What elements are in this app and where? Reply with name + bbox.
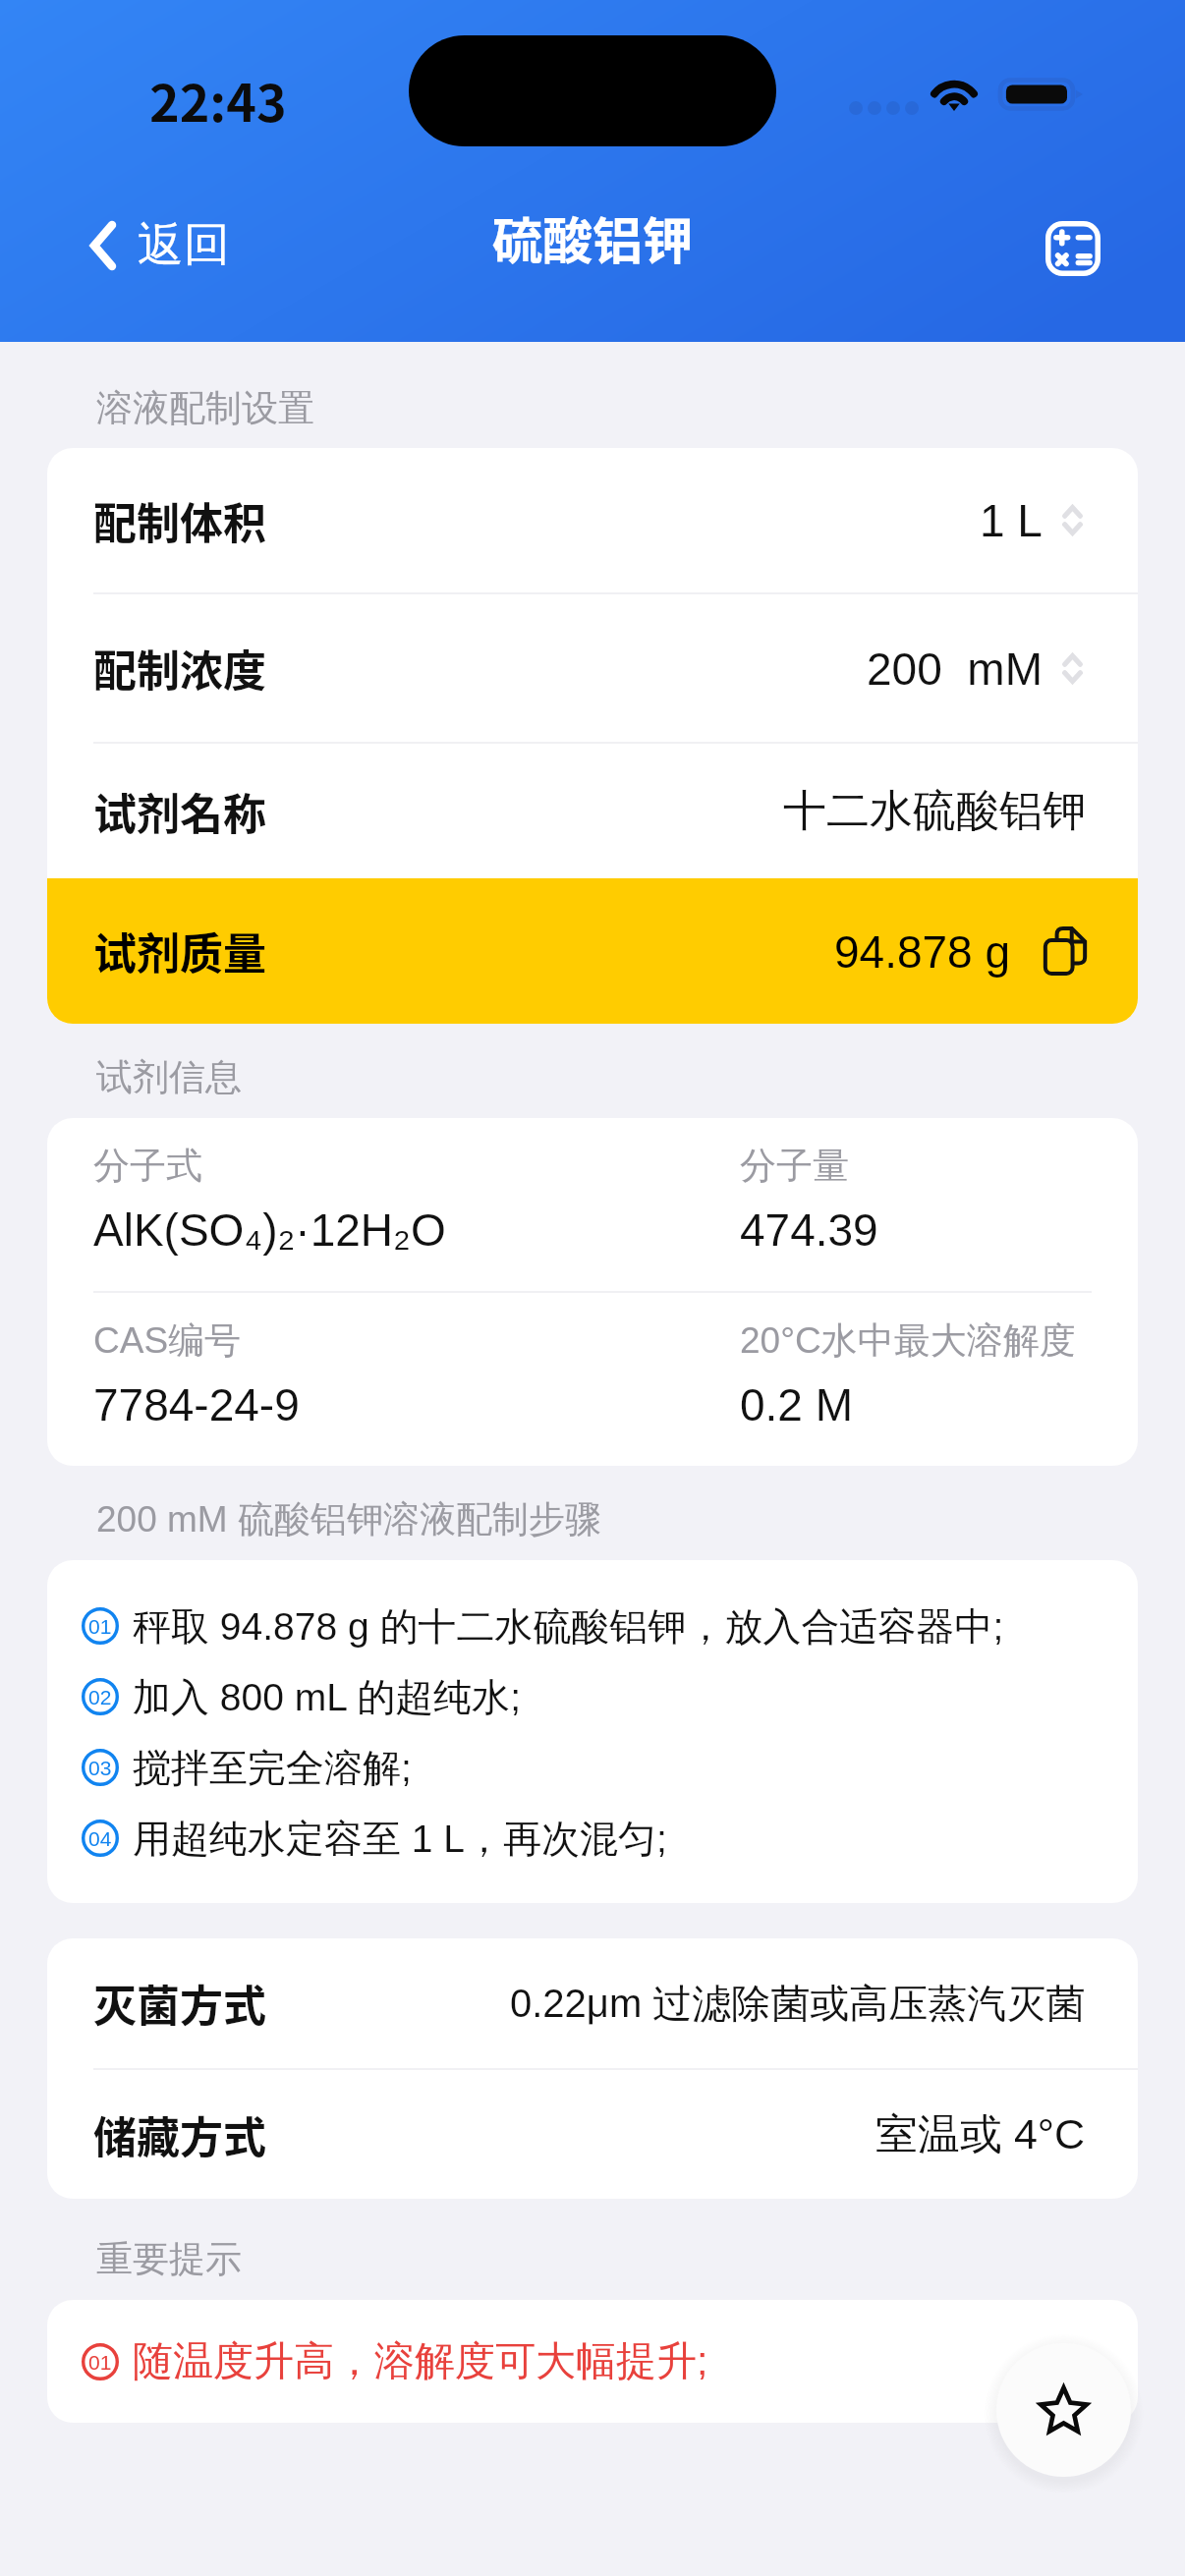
staticText: 溶液配制设置 xyxy=(96,385,314,431)
staticText: 0.2 M xyxy=(740,1379,854,1429)
button[interactable]: Calculator xyxy=(1036,211,1110,286)
staticText: 1 L xyxy=(980,495,1043,545)
staticText: 01 xyxy=(88,2351,112,2374)
staticText: 配制浓度 xyxy=(93,637,266,700)
button[interactable]: 配制浓度 xyxy=(47,594,1138,742)
staticText: CAS编号 xyxy=(93,1317,242,1364)
staticText: 随温度升高，溶解度可大幅提升; xyxy=(133,2336,708,2387)
staticText: 分子式 xyxy=(93,1143,202,1189)
button[interactable]: 试剂质量 xyxy=(47,878,1138,1024)
staticText: 474.39 xyxy=(740,1204,878,1255)
staticText: 返回 xyxy=(138,216,230,274)
staticText: 200 mM 硫酸铝钾溶液配制步骤 xyxy=(96,1496,601,1542)
staticText: 试剂信息 xyxy=(96,1054,242,1100)
staticText: 04 xyxy=(88,1827,112,1850)
button[interactable]: Favorite xyxy=(996,2343,1131,2477)
staticText: 储藏方式 xyxy=(93,2103,266,2166)
button[interactable]: 配制体积 xyxy=(47,448,1138,592)
staticText: 0.22μm 过滤除菌或高压蒸汽灭菌 xyxy=(510,1979,1086,2028)
staticText: 02 xyxy=(88,1686,112,1708)
staticText: 200 mM xyxy=(867,644,1043,694)
staticText: 室温或 4°C xyxy=(875,2108,1086,2161)
staticText: 试剂质量 xyxy=(93,920,266,982)
staticText: 用超纯水定容至 1 L，再次混匀; xyxy=(133,1815,667,1863)
staticText: 分子量 xyxy=(740,1143,849,1189)
button[interactable]: 返回 xyxy=(77,204,244,286)
button[interactable]: 储藏方式 xyxy=(47,2070,1138,2199)
staticText: 94.878 g xyxy=(834,926,1011,977)
staticText: AlK(SO₄)₂·12H₂O xyxy=(93,1204,446,1255)
staticText: 试剂名称 xyxy=(93,780,266,843)
staticText: 搅拌至完全溶解; xyxy=(133,1744,412,1792)
staticText: 硫酸铝钾 xyxy=(492,201,694,274)
staticText: 重要提示 xyxy=(96,2236,242,2282)
button[interactable]: 试剂名称 xyxy=(47,744,1138,878)
staticText: 十二水硫酸铝钾 xyxy=(783,784,1086,838)
staticText: 配制体积 xyxy=(93,489,266,552)
staticText: 灭菌方式 xyxy=(93,1972,266,2035)
staticText: 01 xyxy=(88,1615,112,1638)
staticText: 03 xyxy=(88,1757,112,1779)
staticText: 加入 800 mL 的超纯水; xyxy=(133,1673,522,1721)
button[interactable]: 灭菌方式 xyxy=(47,1938,1138,2068)
staticText: 秤取 94.878 g 的十二水硫酸铝钾，放入合适容器中; xyxy=(133,1602,1004,1651)
staticText: 20°C水中最大溶解度 xyxy=(740,1317,1076,1364)
staticText: 7784-24-9 xyxy=(93,1379,300,1429)
staticText: 22:43 xyxy=(149,63,287,137)
